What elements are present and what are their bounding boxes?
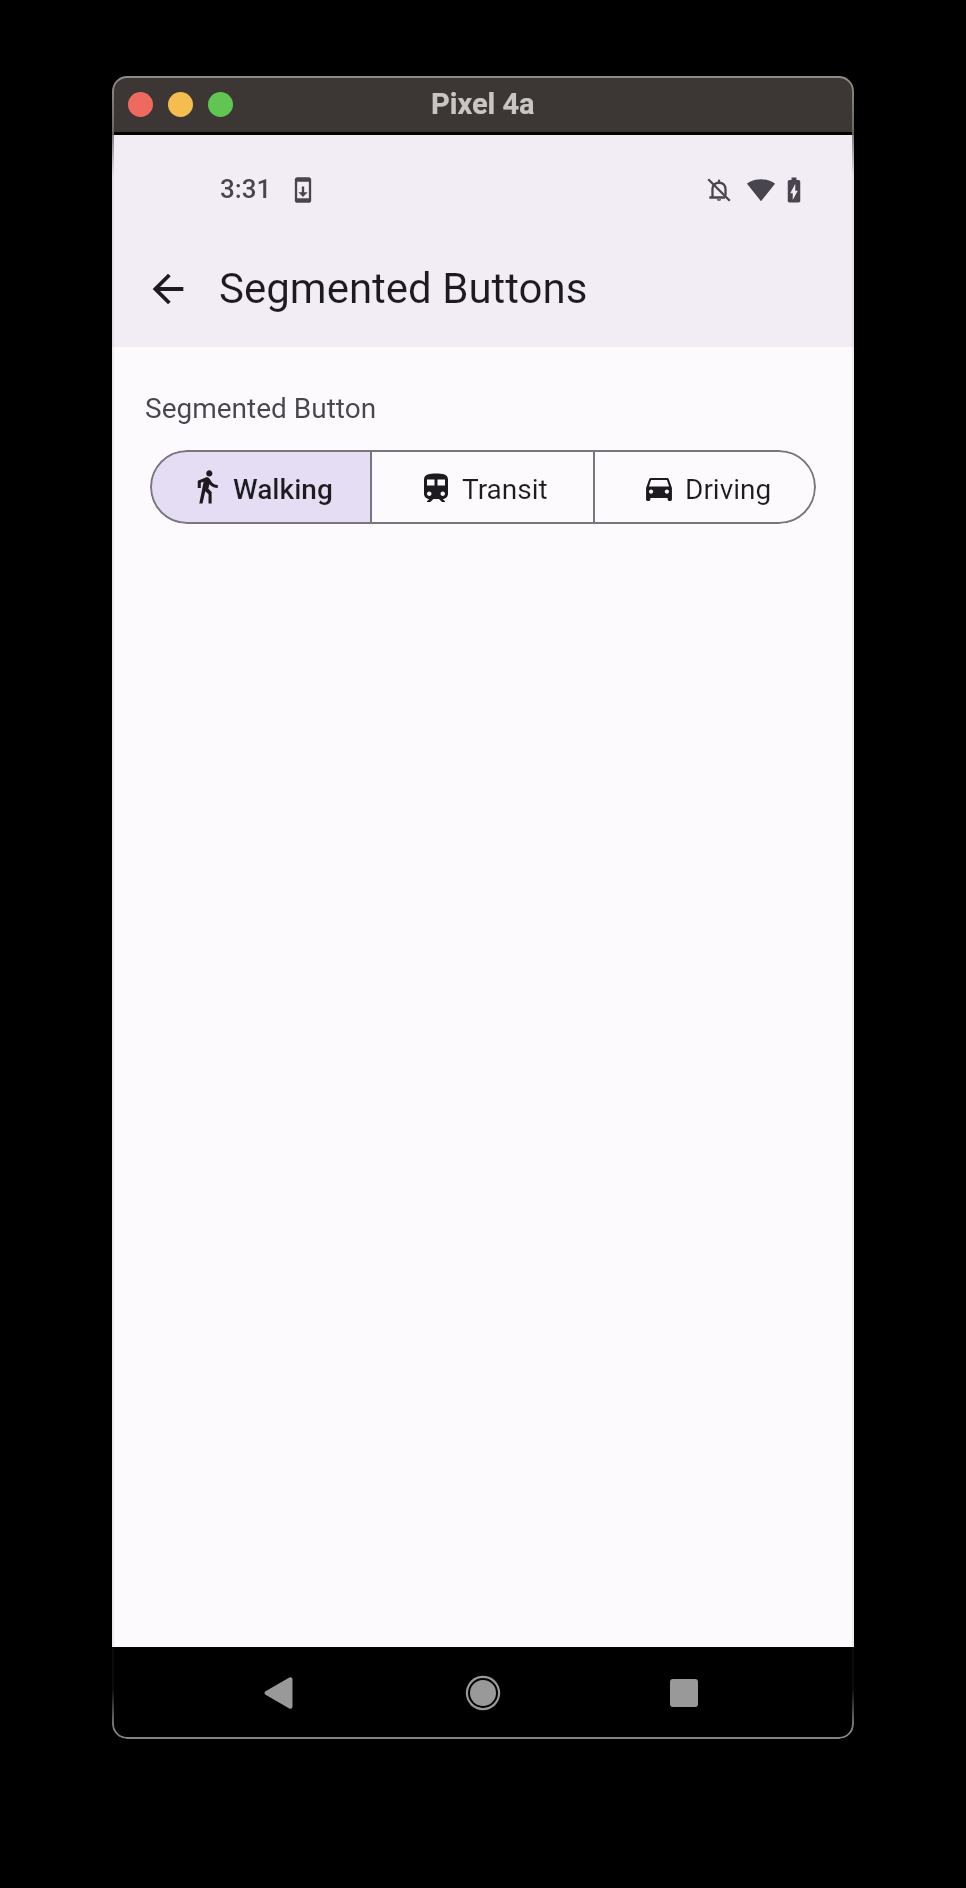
- staticText: Driving: [685, 473, 772, 506]
- staticText: Segmented Button: [145, 392, 377, 425]
- button[interactable]: Recents: [649, 1658, 719, 1728]
- button[interactable]: Home: [448, 1658, 518, 1728]
- staticText: Walking: [233, 473, 333, 506]
- staticText: Transit: [462, 473, 548, 506]
- button[interactable]: Driving: [595, 450, 816, 524]
- staticText: Segmented Buttons: [219, 264, 588, 313]
- button[interactable]: Back: [139, 260, 197, 318]
- button[interactable]: Transit: [372, 450, 593, 524]
- staticText: Pixel 4a: [431, 87, 535, 121]
- staticText: 3:31: [220, 174, 272, 204]
- button[interactable]: Walking: [150, 450, 370, 524]
- button[interactable]: Back: [244, 1658, 314, 1728]
